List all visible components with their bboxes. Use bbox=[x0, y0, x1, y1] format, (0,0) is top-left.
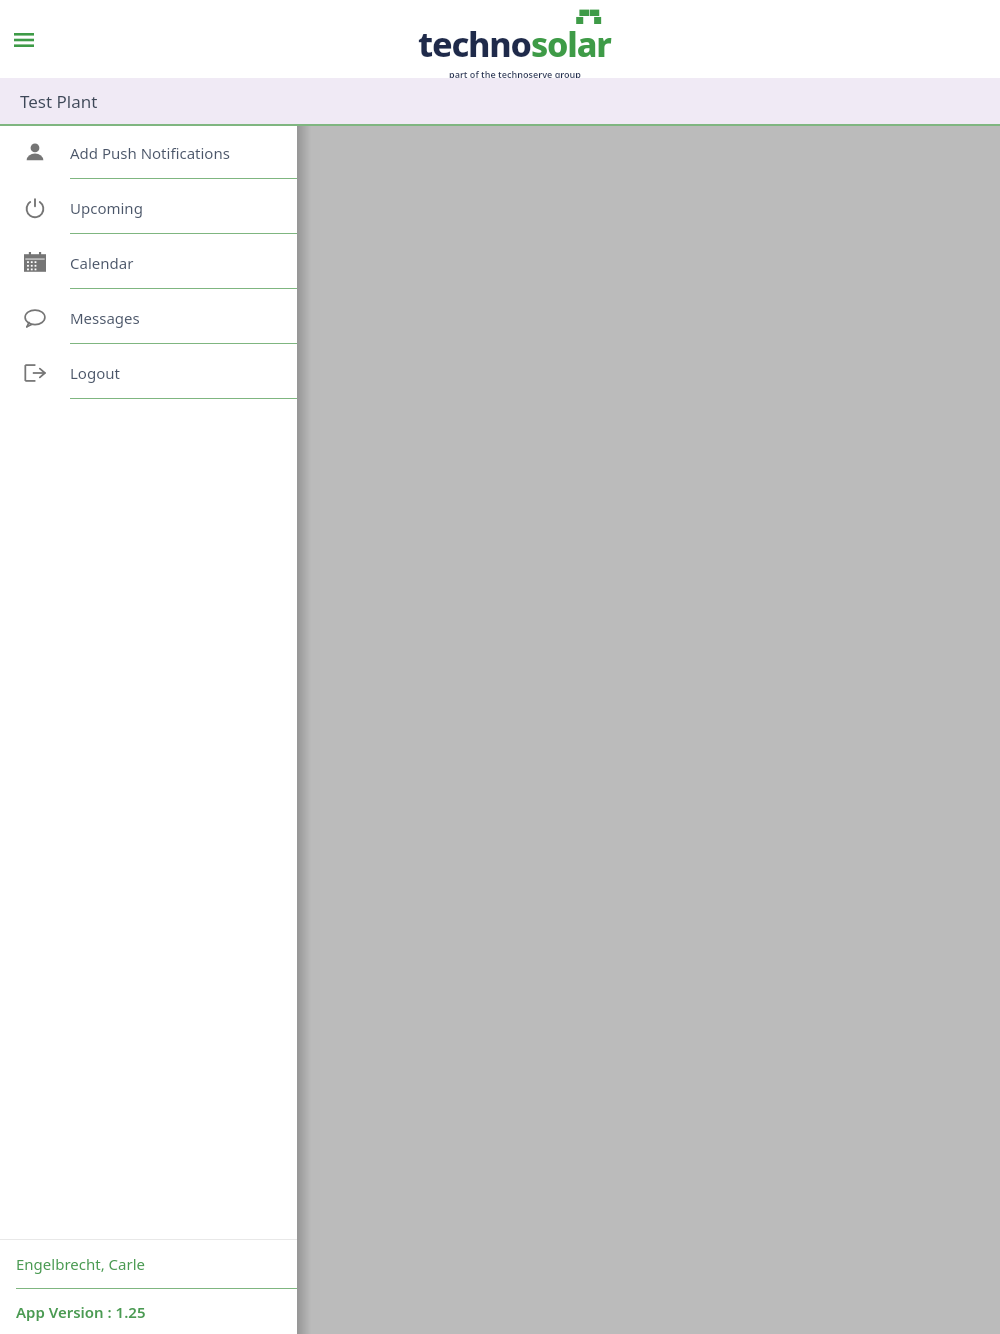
staticText: Test Plant bbox=[20, 90, 98, 113]
staticText: Engelbrecht, Carle bbox=[16, 1254, 145, 1274]
button[interactable]: Messages bbox=[0, 293, 297, 348]
button[interactable]: Logout bbox=[0, 348, 297, 403]
staticText: Messages bbox=[70, 308, 140, 328]
button[interactable]: Open navigation menu bbox=[8, 24, 40, 56]
staticText: Upcoming bbox=[70, 198, 143, 218]
button[interactable]: Upcoming bbox=[0, 183, 297, 238]
button[interactable]: Engelbrecht, Carle bbox=[0, 1240, 297, 1288]
button[interactable]: Add Push Notifications bbox=[0, 128, 297, 183]
staticText: App Version : 1.25 bbox=[16, 1302, 146, 1322]
staticText: Add Push Notifications bbox=[70, 143, 230, 163]
staticText: Calendar bbox=[70, 253, 134, 273]
staticText: Logout bbox=[70, 363, 120, 383]
staticText: techno bbox=[418, 21, 531, 67]
button[interactable]: Calendar bbox=[0, 238, 297, 293]
staticText: part of the technoserve group bbox=[449, 68, 581, 80]
staticText: solar bbox=[531, 21, 611, 67]
